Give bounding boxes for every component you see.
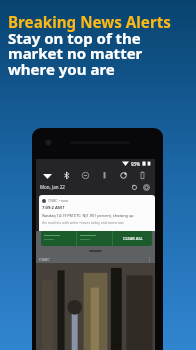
staticText: Mon, Jan 22	[40, 184, 65, 190]
staticText: the markets with wider moves today and t…	[42, 220, 124, 225]
staticText: CLEAR ALL	[123, 236, 143, 241]
button[interactable]: CLEAR ALL	[113, 231, 152, 246]
button[interactable]: Quick setting	[43, 171, 52, 180]
staticText: Breaking News Alerts	[8, 12, 171, 33]
staticText: 93%	[131, 161, 140, 167]
button[interactable]	[77, 231, 112, 246]
staticText: CNBC • now	[48, 198, 68, 203]
button[interactable]: Quick setting	[100, 171, 109, 180]
button[interactable]: Edit tiles	[131, 184, 138, 191]
button[interactable]: Quick setting	[119, 171, 128, 180]
button[interactable]: Settings	[143, 184, 150, 191]
button[interactable]: CNBC • now	[39, 195, 155, 231]
staticText: Stay on top of the market no matter wher…	[8, 28, 143, 80]
staticText: ⋮	[147, 256, 152, 262]
button[interactable]	[41, 231, 76, 246]
staticText: Nasdaq 14:19 PM ETC: NJ1.901 percent, sh…	[42, 213, 134, 218]
staticText: CNBC	[39, 257, 50, 262]
button[interactable]: Quick setting	[81, 171, 90, 180]
staticText: 7:09:2 AM↑	[42, 205, 66, 211]
button[interactable]: Quick setting	[138, 171, 147, 180]
button[interactable]: Quick setting	[62, 171, 71, 180]
